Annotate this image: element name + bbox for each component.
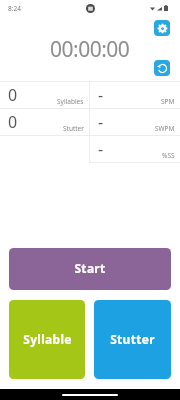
staticText: Stutter xyxy=(110,331,155,347)
staticText: SPM xyxy=(161,97,175,106)
button[interactable]: 0 xyxy=(0,109,89,135)
button[interactable]: Syllable xyxy=(9,300,85,379)
button[interactable]: 0 xyxy=(0,82,89,108)
button[interactable]: - xyxy=(90,109,180,135)
staticText: - xyxy=(98,138,104,160)
button[interactable]: - xyxy=(90,136,180,162)
button[interactable]: Start xyxy=(9,248,171,290)
staticText: %SS xyxy=(162,151,175,160)
staticText: 00:00:00 xyxy=(50,35,130,64)
staticText: - xyxy=(98,84,104,106)
staticText: 0 xyxy=(8,84,18,106)
staticText: SWPM xyxy=(155,124,175,133)
staticText: Start xyxy=(74,260,106,276)
staticText: 0 xyxy=(8,111,18,133)
staticText: Stutter xyxy=(63,124,84,133)
staticText: Syllables xyxy=(57,97,84,106)
button[interactable]: Settings xyxy=(154,20,170,36)
staticText: - xyxy=(98,111,104,133)
staticText: 8:24 xyxy=(8,4,21,13)
button[interactable]: - xyxy=(90,82,180,108)
staticText: Syllable xyxy=(23,331,72,347)
button[interactable]: Reset xyxy=(154,60,170,76)
button[interactable]: Stutter xyxy=(94,300,171,379)
